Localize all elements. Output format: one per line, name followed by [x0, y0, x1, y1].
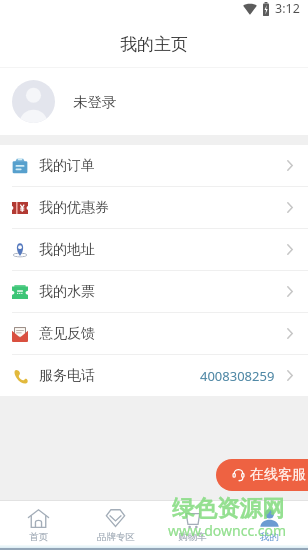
button[interactable]: 我的订单	[0, 145, 308, 186]
button[interactable]: 首页	[0, 501, 77, 545]
button[interactable]: 未登录	[0, 68, 308, 135]
button[interactable]: 服务电话	[0, 355, 308, 396]
staticText: 在线客服	[250, 466, 306, 484]
staticText: 我的主页	[120, 34, 188, 55]
button[interactable]: 我的地址	[0, 229, 308, 270]
staticText: 服务电话	[39, 367, 95, 385]
button[interactable]: 意见反馈	[0, 313, 308, 354]
staticText: 我的	[260, 531, 279, 543]
button[interactable]: 品牌专区	[77, 501, 154, 545]
staticText: 4008308259	[200, 367, 275, 385]
staticText: 我的优惠券	[39, 199, 109, 217]
staticText: 绿色资源网	[172, 494, 285, 522]
staticText: 购物车	[178, 531, 207, 543]
button[interactable]: 我的水票	[0, 271, 308, 312]
staticText: 未登录	[73, 93, 117, 111]
button[interactable]: 购物车	[154, 501, 231, 545]
staticText: 我的地址	[39, 241, 95, 259]
staticText: 我的水票	[39, 283, 95, 301]
staticText: 品牌专区	[97, 531, 135, 543]
button[interactable]: 在线客服	[216, 459, 308, 491]
button[interactable]: 我的优惠券	[0, 187, 308, 228]
staticText: 我的订单	[39, 157, 95, 175]
staticText: 3:12	[275, 0, 300, 17]
button[interactable]: 我的	[231, 501, 308, 545]
staticText: www.downcc.com	[168, 521, 287, 540]
staticText: 首页	[29, 531, 48, 543]
staticText: 意见反馈	[39, 325, 95, 343]
